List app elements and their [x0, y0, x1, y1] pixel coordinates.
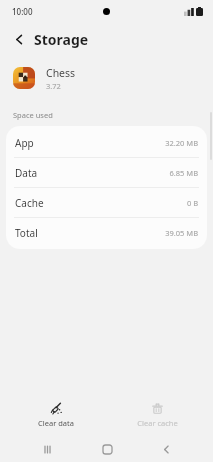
button[interactable]: Back — [153, 436, 179, 462]
staticText: 32.20 MB — [165, 138, 198, 148]
button[interactable]: Clear data — [11, 398, 101, 432]
button[interactable]: Data — [6, 158, 207, 187]
staticText: Space used — [13, 110, 53, 120]
staticText: App — [15, 136, 34, 150]
staticText: Storage — [34, 30, 89, 49]
staticText: Clear cache — [137, 418, 178, 428]
staticText: Data — [15, 166, 38, 180]
button[interactable]: Back — [6, 26, 32, 52]
button[interactable]: App — [6, 128, 207, 157]
button[interactable]: Chess — [0, 56, 213, 100]
staticText: 39.05 MB — [165, 228, 198, 238]
staticText: 0 B — [186, 198, 198, 208]
staticText: Total — [15, 226, 38, 240]
button[interactable]: Cache — [6, 188, 207, 217]
staticText: Chess — [46, 66, 76, 80]
staticText: 3.72 — [46, 81, 61, 91]
button[interactable]: Home — [94, 436, 120, 462]
button[interactable]: Total — [6, 218, 207, 247]
button[interactable]: Recents — [34, 436, 60, 462]
staticText: Cache — [15, 196, 44, 210]
button[interactable]: Clear cache — [112, 398, 202, 432]
staticText: 10:00 — [12, 6, 33, 17]
staticText: 6.85 MB — [169, 168, 198, 178]
staticText: Clear data — [38, 418, 74, 428]
